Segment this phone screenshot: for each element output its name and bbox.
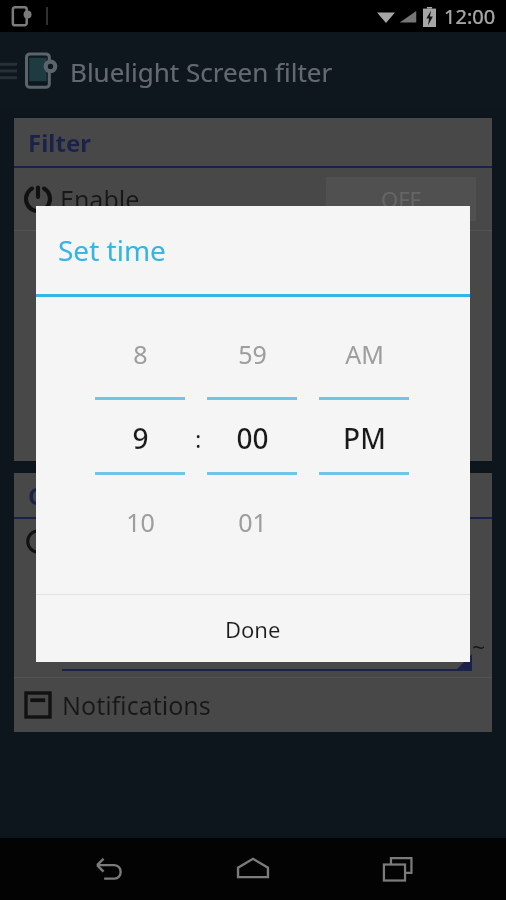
button[interactable]: 00 (206, 419, 298, 457)
staticText: C (28, 479, 44, 512)
staticText: AM (345, 337, 384, 371)
button[interactable]: 59 (206, 335, 298, 373)
button[interactable]: AM (318, 335, 410, 373)
staticText: Enable (60, 182, 140, 216)
button[interactable]: Done (36, 595, 470, 662)
button[interactable]: Menu (0, 59, 17, 83)
button[interactable]: 9:00 PM (62, 621, 472, 671)
staticText: PM (343, 419, 386, 457)
button[interactable]: Filter Times (14, 519, 492, 563)
staticText: Filter Times (62, 524, 198, 558)
button[interactable]: Home (216, 838, 290, 900)
staticText: : (195, 422, 202, 455)
button[interactable]: Enable (14, 168, 492, 230)
button[interactable]: 01 (206, 503, 298, 541)
staticText: Notifications (62, 688, 211, 722)
staticText: 59 (238, 337, 267, 371)
button[interactable]: Notifications (14, 678, 492, 732)
button[interactable]: OFF (326, 177, 476, 221)
staticText: Bluelight Screen filter (70, 54, 333, 89)
button[interactable]: Back (71, 838, 145, 900)
button[interactable]: 8 (94, 335, 186, 373)
staticText: Done (225, 614, 281, 644)
staticText: OFF (381, 184, 422, 214)
staticText: 00 (236, 419, 269, 457)
staticText: Set time (58, 231, 166, 269)
staticText: Custom (62, 570, 153, 604)
staticText: Filter (28, 126, 91, 159)
staticText: 9:00 PM (62, 629, 156, 663)
button[interactable]: 9 (94, 419, 186, 457)
button[interactable]: PM (318, 419, 410, 457)
staticText: 12:00 (444, 3, 496, 30)
staticText: 10 (126, 505, 155, 539)
staticText: 9 (132, 419, 149, 457)
button[interactable]: 10 (94, 503, 186, 541)
button[interactable]: Recent apps (361, 838, 435, 900)
staticText: 8 (133, 337, 148, 371)
staticText: 01 (238, 505, 267, 539)
